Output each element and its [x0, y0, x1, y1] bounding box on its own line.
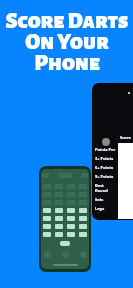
- button[interactable]: [55, 232, 63, 237]
- button[interactable]: Stats: [80, 251, 87, 258]
- button[interactable]: [79, 232, 87, 237]
- button[interactable]: [67, 232, 75, 237]
- button[interactable]: [79, 208, 87, 213]
- button[interactable]: [79, 216, 87, 221]
- staticText: Phone: [34, 52, 100, 75]
- staticText: Score Darts: [5, 10, 129, 33]
- button[interactable]: [43, 232, 51, 237]
- staticText: Sets: [95, 197, 116, 202]
- staticText: Score: [120, 135, 131, 140]
- staticText: 3+ Points: [95, 156, 116, 161]
- staticText: Best Round: [95, 183, 116, 193]
- button[interactable]: [67, 208, 75, 213]
- staticText: On Your: [25, 31, 109, 54]
- button[interactable]: [43, 208, 51, 213]
- button[interactable]: [55, 224, 63, 229]
- button[interactable]: Score: [92, 83, 133, 220]
- staticText: Legs: [95, 206, 116, 211]
- button[interactable]: [43, 216, 51, 221]
- button[interactable]: [43, 224, 51, 229]
- button[interactable]: [55, 216, 63, 221]
- button[interactable]: Undo: [39, 166, 91, 272]
- button[interactable]: [67, 224, 75, 229]
- staticText: 6+ Points: [95, 165, 116, 170]
- button[interactable]: [60, 241, 70, 246]
- staticText: 9+ Points: [95, 174, 116, 179]
- staticText: Points Per: [95, 147, 116, 152]
- button[interactable]: [55, 208, 63, 213]
- button[interactable]: [79, 224, 87, 229]
- button[interactable]: Undo: [44, 251, 51, 258]
- button[interactable]: [67, 216, 75, 221]
- button[interactable]: Home: [62, 251, 69, 258]
